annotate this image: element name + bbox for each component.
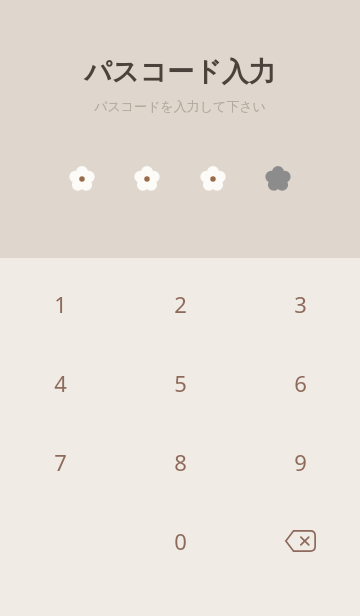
staticText: 4: [54, 368, 67, 398]
button[interactable]: 3: [240, 264, 360, 343]
button[interactable]: 4: [0, 343, 120, 422]
staticText: 1: [54, 289, 67, 319]
staticText: パスコード入力: [84, 55, 276, 89]
button[interactable]: 0: [120, 501, 240, 580]
staticText: 5: [174, 368, 187, 398]
button[interactable]: 9: [240, 422, 360, 501]
staticText: 7: [54, 447, 67, 477]
staticText: 9: [294, 447, 307, 477]
button[interactable]: 1: [0, 264, 120, 343]
button[interactable]: 8: [120, 422, 240, 501]
button[interactable]: 7: [0, 422, 120, 501]
staticText: 8: [174, 447, 187, 477]
staticText: 0: [174, 526, 187, 556]
staticText: パスコードを入力して下さい: [94, 98, 266, 114]
button[interactable]: 5: [120, 343, 240, 422]
staticText: 2: [174, 289, 187, 319]
button[interactable]: Delete: [240, 501, 360, 580]
staticText: 6: [294, 368, 307, 398]
button[interactable]: 2: [120, 264, 240, 343]
staticText: 3: [294, 289, 307, 319]
button[interactable]: 6: [240, 343, 360, 422]
